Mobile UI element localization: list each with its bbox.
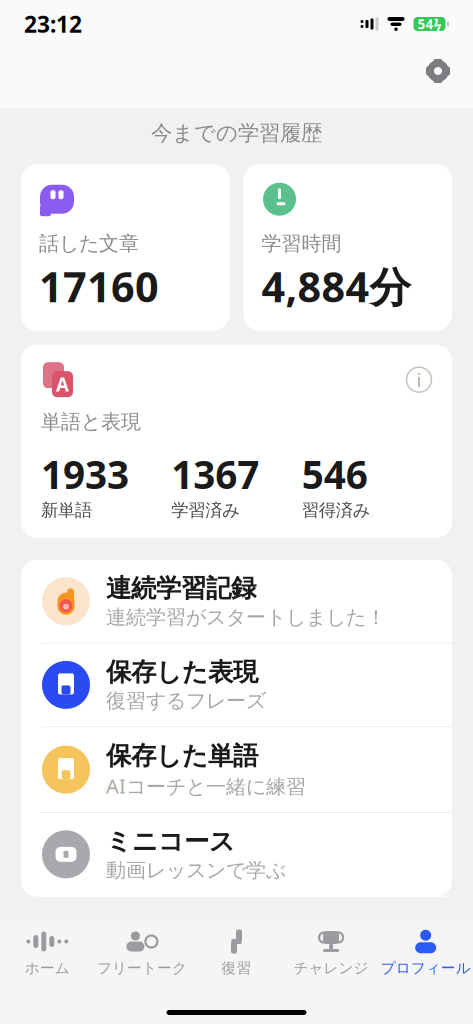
staticText: プロフィール [381,959,471,977]
staticText: 話した文章 [39,231,139,256]
button[interactable]: チャレンジ [284,920,378,977]
staticText: 連続学習記録 [106,573,256,604]
button[interactable]: 保存した単語 [21,727,452,813]
staticText: フリートーク [97,959,187,977]
staticText: 今までの学習履歴 [151,120,322,146]
staticText: 復習 [221,959,251,977]
button[interactable]: Settings [425,48,473,94]
staticText: 4,884分 [261,259,410,314]
staticText: 動画レッスンで学ぶ [106,858,286,883]
staticText: A [56,372,69,397]
button[interactable]: 復習 [189,920,284,977]
staticText: 復習するフレーズ [106,689,266,713]
staticText: 17160 [39,259,159,314]
button[interactable]: ミニコース [21,813,452,897]
staticText: 保存した単語 [106,740,258,771]
staticText: 単語と表現 [41,410,141,434]
button[interactable]: ホーム [0,920,95,977]
staticText: AIコーチと一緒に練習 [106,772,306,799]
staticText: 546 [302,448,368,499]
staticText: 学習済み [171,500,240,521]
staticText: ホーム [25,959,70,977]
button[interactable]: フリートーク [95,920,189,977]
staticText: 連続学習がスタートしました！ [106,605,386,630]
staticText: ミニコース [106,826,235,857]
button[interactable]: プロフィール [378,920,473,977]
staticText: 学習時間 [261,231,341,256]
staticText: 保存した表現 [106,656,258,688]
staticText: チャレンジ [294,959,369,977]
staticText: 習得済み [302,500,371,521]
button[interactable]: Information [406,367,432,393]
staticText: 1367 [171,448,259,499]
staticText: 23:12 [24,9,82,39]
staticText: ϟ [433,14,441,34]
button[interactable]: 保存した表現 [21,643,452,727]
staticText: 1933 [41,448,129,499]
staticText: 54 [417,15,433,33]
staticText: 新単語 [41,500,92,521]
button[interactable]: 連続学習記録 [21,560,452,644]
staticText: i [416,367,421,392]
